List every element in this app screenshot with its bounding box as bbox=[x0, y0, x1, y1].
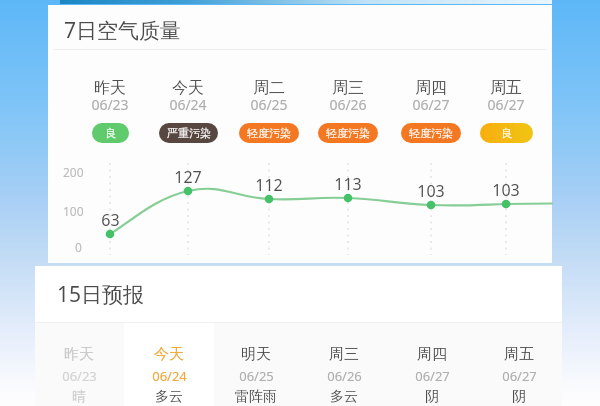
button[interactable]: 昨天 bbox=[34, 345, 124, 406]
staticText: 06/25 bbox=[239, 367, 274, 385]
button[interactable]: 今天 bbox=[143, 78, 233, 117]
staticText: 103 bbox=[417, 180, 445, 202]
staticText: 06/26 bbox=[329, 95, 367, 114]
button[interactable]: 今天 bbox=[124, 345, 214, 406]
staticText: 今天 bbox=[154, 345, 184, 364]
staticText: 周二 bbox=[253, 78, 285, 98]
staticText: 63 bbox=[101, 209, 120, 231]
button[interactable]: 良 bbox=[480, 123, 533, 143]
staticText: 晴 bbox=[72, 388, 86, 406]
button[interactable]: 周三 bbox=[303, 78, 393, 117]
button[interactable]: 昨天 bbox=[65, 78, 155, 117]
staticText: 周五 bbox=[490, 78, 522, 98]
staticText: 轻度污染 bbox=[247, 126, 291, 140]
staticText: 阴 bbox=[425, 388, 439, 406]
staticText: 轻度污染 bbox=[326, 126, 370, 140]
staticText: 06/24 bbox=[152, 367, 187, 385]
staticText: 周三 bbox=[329, 345, 359, 364]
staticText: 周四 bbox=[417, 345, 447, 364]
staticText: 周四 bbox=[415, 78, 447, 98]
staticText: 100 bbox=[63, 203, 84, 219]
staticText: 06/27 bbox=[502, 367, 537, 385]
staticText: 112 bbox=[255, 174, 283, 196]
staticText: 103 bbox=[492, 179, 520, 201]
staticText: 06/23 bbox=[62, 367, 97, 385]
button[interactable]: 周三 bbox=[299, 345, 389, 406]
staticText: 阴 bbox=[512, 388, 526, 406]
staticText: 周三 bbox=[332, 78, 364, 98]
staticText: 雷阵雨 bbox=[235, 388, 277, 406]
staticText: 06/27 bbox=[487, 95, 525, 114]
staticText: 06/27 bbox=[415, 367, 450, 385]
button[interactable]: 良 bbox=[92, 123, 129, 143]
staticText: 昨天 bbox=[94, 78, 126, 98]
staticText: 0 bbox=[75, 239, 82, 255]
button[interactable]: 15日预报 bbox=[57, 280, 145, 309]
button[interactable]: 轻度污染 bbox=[239, 123, 299, 143]
button[interactable]: 周四 bbox=[387, 345, 477, 406]
staticText: 严重污染 bbox=[167, 126, 211, 140]
staticText: 良 bbox=[105, 126, 116, 140]
staticText: 06/25 bbox=[250, 95, 288, 114]
staticText: 113 bbox=[334, 173, 362, 195]
staticText: 良 bbox=[501, 126, 512, 140]
button[interactable]: 周五 bbox=[461, 78, 551, 117]
staticText: 06/23 bbox=[91, 95, 129, 114]
button[interactable]: 周二 bbox=[224, 78, 314, 117]
staticText: 06/24 bbox=[169, 95, 207, 114]
staticText: 06/27 bbox=[412, 95, 450, 114]
staticText: 127 bbox=[174, 166, 202, 188]
staticText: 多云 bbox=[330, 388, 358, 406]
staticText: 明天 bbox=[241, 345, 271, 364]
button[interactable]: 轻度污染 bbox=[401, 123, 461, 143]
button[interactable]: 周五 bbox=[474, 345, 564, 406]
staticText: 周五 bbox=[504, 345, 534, 364]
staticText: 7日空气质量 bbox=[64, 16, 182, 45]
button[interactable]: 7日空气质量 bbox=[48, 5, 552, 263]
staticText: 多云 bbox=[155, 388, 183, 406]
staticText: 今天 bbox=[172, 78, 204, 98]
staticText: 昨天 bbox=[64, 345, 94, 364]
button[interactable]: 轻度污染 bbox=[318, 123, 378, 143]
staticText: 轻度污染 bbox=[409, 126, 453, 140]
staticText: 200 bbox=[63, 164, 84, 180]
button[interactable]: 明天 bbox=[211, 345, 301, 406]
button[interactable]: 严重污染 bbox=[159, 123, 218, 143]
button[interactable]: 周四 bbox=[386, 78, 476, 117]
staticText: 06/26 bbox=[327, 367, 362, 385]
